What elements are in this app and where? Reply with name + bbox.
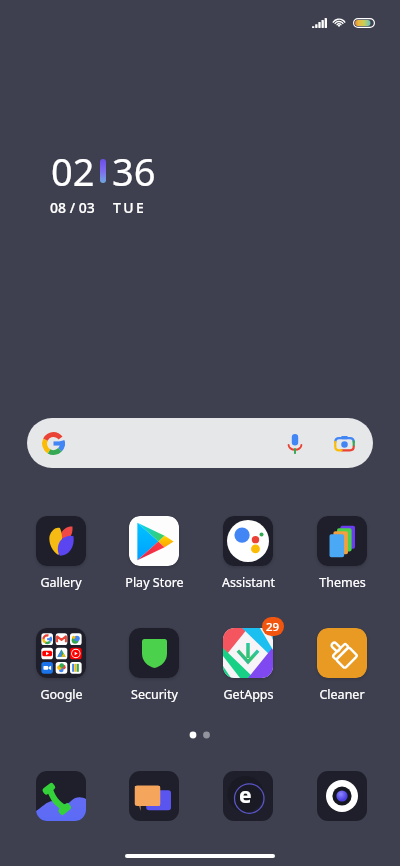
staticText: Security — [131, 686, 178, 703]
staticText: Play Store — [125, 574, 184, 591]
button[interactable]: 29 — [203, 624, 293, 703]
button[interactable] — [27, 418, 373, 468]
staticText: TUE — [113, 198, 147, 217]
button[interactable]: Phone — [36, 771, 86, 821]
button[interactable]: Google — [16, 624, 106, 703]
staticText: Themes — [319, 574, 366, 591]
staticText: Google — [40, 686, 83, 703]
staticText: 29 — [266, 619, 280, 635]
button[interactable]: Themes — [297, 512, 387, 591]
staticText: 08 / 03 — [50, 198, 95, 217]
staticText: 36 — [112, 145, 156, 197]
staticText: 02 — [51, 145, 95, 197]
staticText: Assistant — [222, 574, 275, 591]
button[interactable]: Browser — [223, 771, 273, 821]
button[interactable]: Camera — [317, 771, 367, 821]
button[interactable]: Play Store — [109, 512, 199, 591]
button[interactable]: Gallery — [16, 512, 106, 591]
staticText: e — [239, 781, 252, 810]
button[interactable]: Assistant — [203, 512, 293, 591]
button[interactable]: Cleaner — [297, 624, 387, 703]
staticText: GetApps — [223, 686, 274, 703]
staticText: Cleaner — [319, 686, 365, 703]
button[interactable]: Security — [109, 624, 199, 703]
staticText: Gallery — [40, 574, 82, 591]
button[interactable]: Messages — [129, 771, 179, 821]
